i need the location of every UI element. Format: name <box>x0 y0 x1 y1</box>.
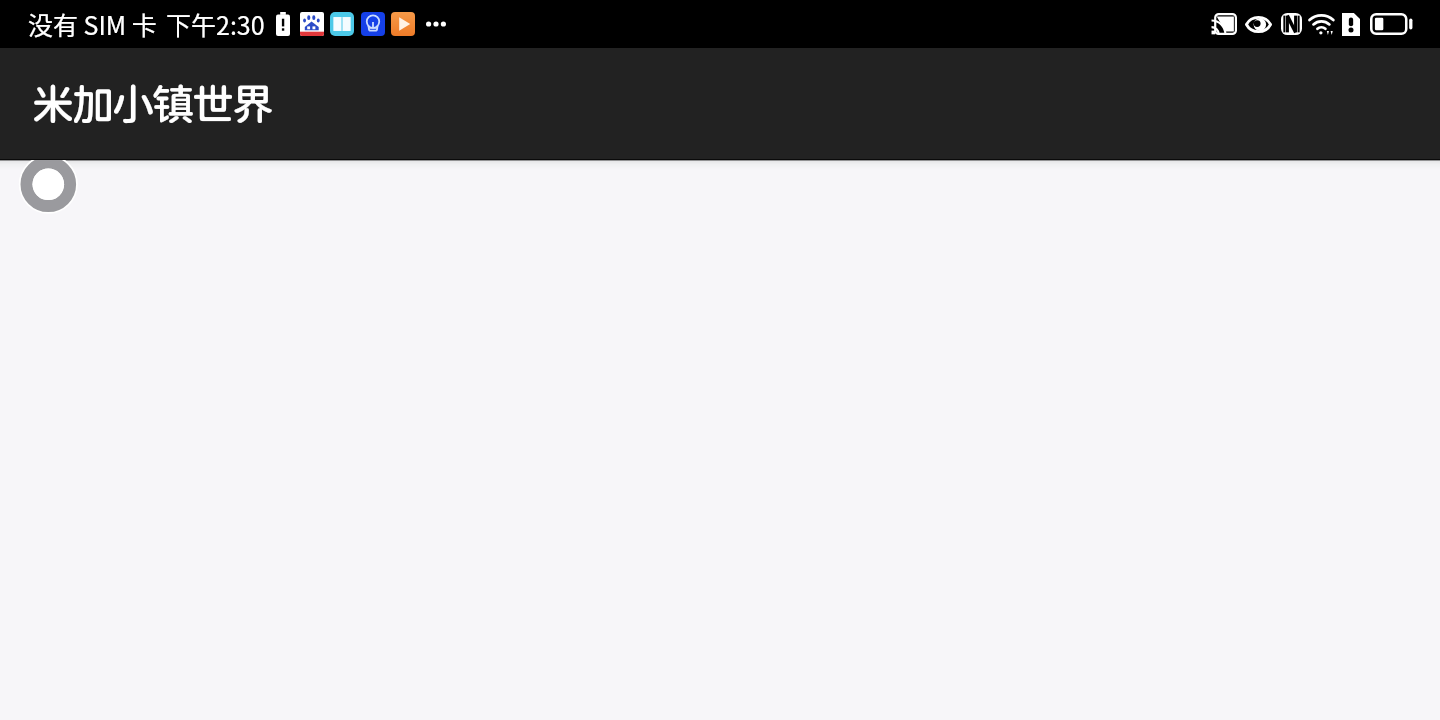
other: Battery level <box>1370 13 1411 35</box>
other: Loading <box>0 160 110 250</box>
staticText: 米加小镇世界 <box>32 79 273 129</box>
other: Tips notification <box>361 12 385 36</box>
other: NFC <box>1281 13 1302 35</box>
other: Wi-Fi <box>1309 13 1336 35</box>
button[interactable]: 米加小镇世界 <box>32 79 273 129</box>
other: Cast screen <box>1211 13 1237 35</box>
other: No SIM card <box>1342 13 1360 36</box>
other: More notifications <box>426 20 446 28</box>
other: Baidu notification <box>300 12 324 36</box>
staticText: 没有 SIM 卡 <box>28 6 157 42</box>
staticText: 下午2:30 <box>166 6 265 42</box>
other: Player notification <box>391 12 415 36</box>
other: Battery warning <box>276 12 290 36</box>
other: Eye comfort mode <box>1245 15 1272 34</box>
other: Reader notification <box>330 12 354 36</box>
